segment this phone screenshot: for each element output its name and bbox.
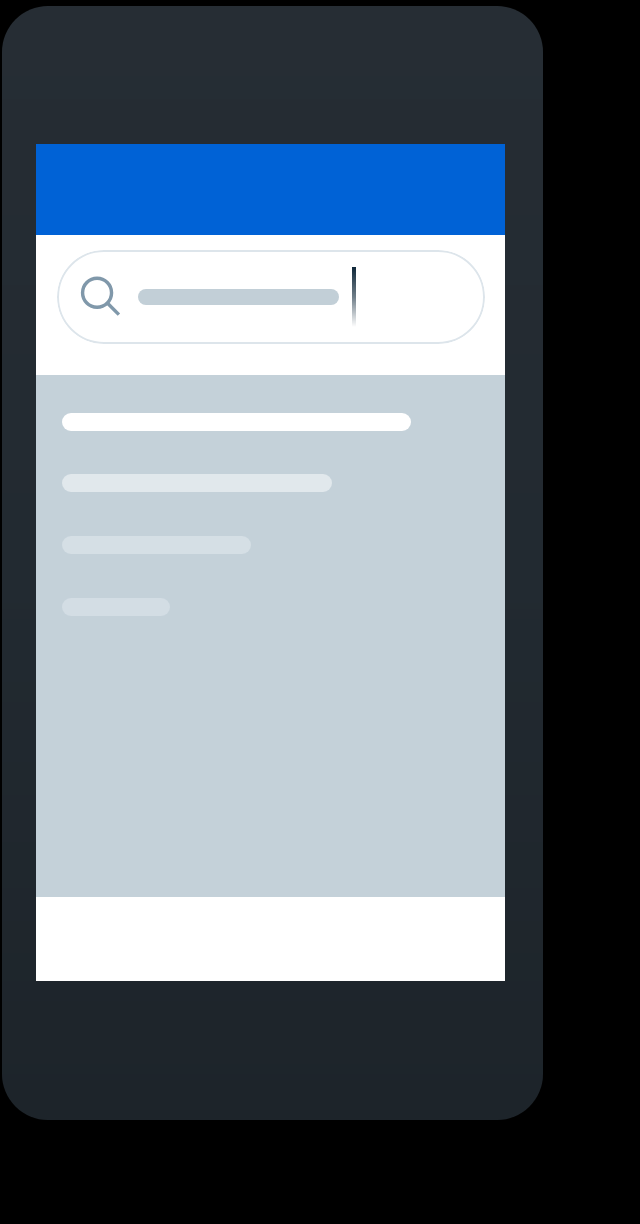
button[interactable]: Search field <box>57 250 485 344</box>
